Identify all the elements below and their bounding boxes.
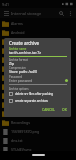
button[interactable]: Store path: /sd/0 bbox=[9, 69, 38, 74]
staticText: Podcasts bbox=[11, 102, 27, 107]
staticText: dns.txt bbox=[11, 138, 23, 143]
button[interactable]: Recordings bbox=[0, 118, 76, 127]
staticText: Pictures bbox=[11, 93, 25, 98]
staticText: Download bbox=[11, 57, 29, 62]
button[interactable]: tar.th-archive.tar.7z bbox=[9, 50, 61, 55]
button[interactable]: Enter password bbox=[9, 79, 65, 83]
button[interactable]: More options bbox=[66, 9, 75, 18]
button[interactable]: Download bbox=[0, 55, 76, 64]
button[interactable]: Podcasts bbox=[0, 100, 76, 109]
button[interactable]: CANCEL bbox=[41, 106, 56, 113]
staticText: delete src files after packing bbox=[15, 92, 53, 96]
button[interactable]: Pictures bbox=[0, 91, 76, 100]
button[interactable]: Zip bbox=[9, 61, 15, 66]
button[interactable]: Android bbox=[0, 28, 76, 37]
button[interactable]: DCIM bbox=[0, 37, 76, 46]
staticText: Recordings bbox=[11, 120, 30, 125]
button[interactable]: Search bbox=[56, 8, 66, 18]
staticText: Enter password bbox=[9, 79, 33, 83]
button[interactable]: Movies bbox=[0, 64, 76, 73]
staticText: Movies bbox=[11, 66, 23, 71]
staticText: Store path: /sd/0 bbox=[9, 69, 38, 74]
button[interactable]: 1569891870.png bbox=[0, 127, 76, 136]
staticText: Password bbox=[9, 75, 23, 79]
button[interactable]: Alarms bbox=[0, 19, 76, 28]
button[interactable]: dns.txt bbox=[0, 136, 76, 145]
staticText: Zip bbox=[9, 61, 15, 66]
staticText: Compression bbox=[9, 66, 26, 70]
staticText: Notifications bbox=[11, 84, 33, 89]
staticText: Music bbox=[11, 75, 21, 80]
staticText: 1569891870.png bbox=[11, 129, 40, 134]
button[interactable]: Show password bbox=[64, 78, 69, 83]
button[interactable]: STUdEVsync bbox=[0, 145, 76, 154]
staticText: tar.th-archive.tar.7z bbox=[9, 50, 41, 55]
staticText: Alarms bbox=[11, 21, 23, 26]
staticText: Archive format bbox=[9, 58, 28, 62]
staticText: CANCEL bbox=[42, 107, 55, 112]
staticText: Archive name bbox=[9, 47, 27, 51]
staticText: Internal storage bbox=[11, 11, 56, 16]
staticText: Documents bbox=[11, 48, 31, 53]
staticText: OK bbox=[62, 107, 67, 112]
button[interactable]: Navigation menu bbox=[1, 8, 11, 18]
button[interactable]: Notifications bbox=[0, 82, 76, 91]
staticText: 9:41 bbox=[2, 2, 10, 7]
staticText: Archive options bbox=[9, 87, 29, 91]
button[interactable]: create separate archives bbox=[7, 98, 69, 104]
staticText: Android bbox=[11, 30, 25, 35]
button[interactable]: Ringtones bbox=[0, 109, 76, 118]
button[interactable]: OK bbox=[61, 106, 68, 113]
button[interactable]: Music bbox=[0, 73, 76, 82]
button[interactable]: Documents bbox=[0, 46, 76, 55]
button[interactable]: delete src files after packing bbox=[7, 91, 69, 97]
staticText: STUdEVsync bbox=[11, 147, 32, 152]
staticText: Create archive bbox=[9, 40, 40, 46]
staticText: create separate archives bbox=[15, 99, 48, 103]
staticText: DCIM bbox=[11, 39, 21, 44]
